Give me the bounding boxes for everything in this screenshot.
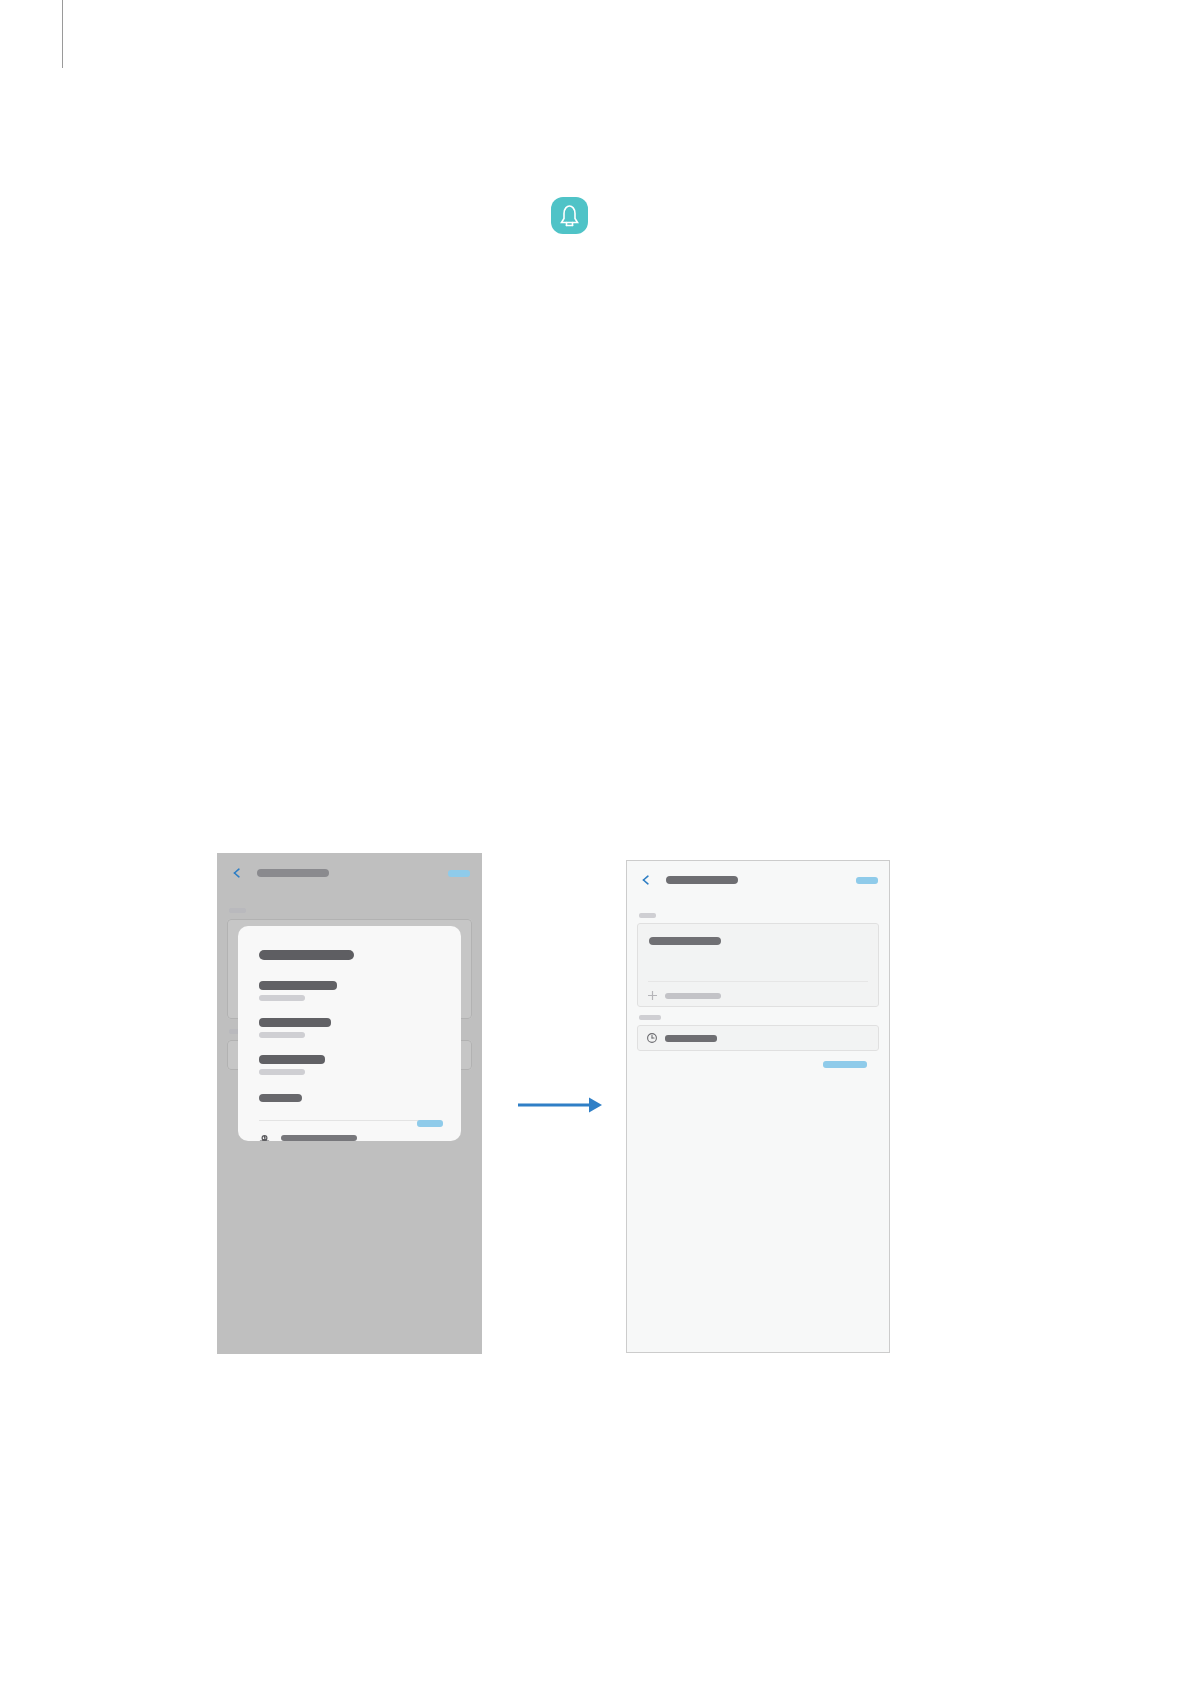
- button[interactable]: [238, 1055, 461, 1075]
- button[interactable]: Cancel: [417, 1120, 443, 1127]
- button[interactable]: Save: [856, 877, 878, 884]
- button[interactable]: [238, 1135, 461, 1141]
- button[interactable]: View more: [819, 1057, 871, 1072]
- button[interactable]: [238, 1018, 461, 1038]
- button[interactable]: [238, 981, 461, 1001]
- button[interactable]: [637, 923, 879, 1007]
- button[interactable]: Back: [638, 872, 654, 888]
- button[interactable]: [637, 1025, 879, 1051]
- button[interactable]: Back: [229, 865, 245, 881]
- button[interactable]: Reminder app icon: [551, 197, 588, 234]
